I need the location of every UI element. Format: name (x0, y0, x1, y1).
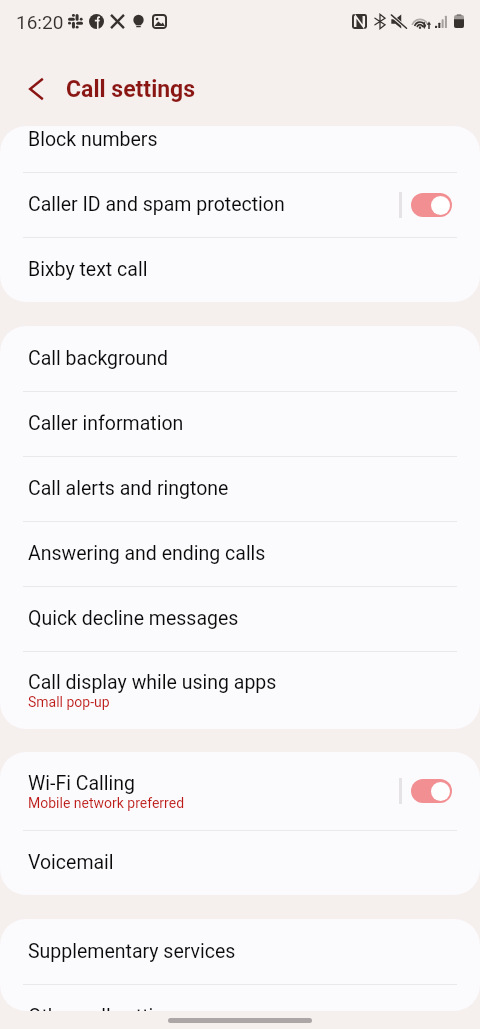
button[interactable]: Wi-Fi Calling (0, 752, 480, 830)
staticText: Block numbers (28, 128, 158, 151)
staticText: Wi-Fi Calling (28, 772, 136, 795)
staticText: Caller ID and spam protection (28, 193, 285, 216)
staticText: Voicemail (28, 851, 114, 874)
button[interactable]: Call background (0, 326, 480, 391)
staticText: Caller information (28, 412, 184, 435)
button[interactable]: Block numbers (0, 126, 480, 172)
staticText: Mobile network preferred (28, 795, 185, 811)
staticText: Quick decline messages (28, 607, 239, 630)
staticText: Bixby text call (28, 258, 148, 281)
button[interactable]: Call display while using apps (0, 651, 480, 729)
button[interactable]: Caller ID and spam protection (0, 172, 480, 237)
button[interactable]: Voicemail (0, 830, 480, 895)
staticText: Call display while using apps (28, 671, 277, 694)
button[interactable]: Supplementary services (0, 919, 480, 984)
button[interactable]: Back (14, 67, 58, 111)
staticText: 16:20 (16, 11, 64, 33)
staticText: Small pop-up (28, 694, 110, 710)
staticText: Call settings (66, 76, 196, 103)
staticText: Answering and ending calls (28, 542, 266, 565)
button[interactable]: Toggle Wi-Fi Calling (411, 779, 452, 803)
staticText: Other call settings (28, 1005, 186, 1011)
button[interactable]: Answering and ending calls (0, 521, 480, 586)
staticText: Call alerts and ringtone (28, 477, 229, 500)
button[interactable]: Toggle Caller ID and spam protection (411, 193, 452, 217)
button[interactable]: Caller information (0, 391, 480, 456)
button[interactable]: Quick decline messages (0, 586, 480, 651)
button[interactable]: Bixby text call (0, 237, 480, 302)
button[interactable]: Other call settings (0, 984, 480, 1011)
staticText: Call background (28, 347, 169, 370)
button[interactable]: Call alerts and ringtone (0, 456, 480, 521)
staticText: Supplementary services (28, 940, 236, 963)
